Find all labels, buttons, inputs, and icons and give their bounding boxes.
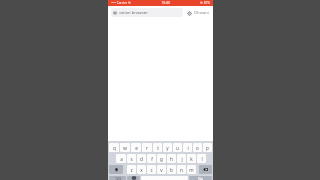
staticText: t	[157, 145, 159, 151]
button[interactable]: b	[167, 165, 176, 174]
staticText: z	[130, 167, 133, 173]
staticText: s	[130, 156, 133, 162]
staticText: onion browser	[119, 10, 148, 16]
button[interactable]: Emoji	[127, 176, 140, 180]
staticText: b	[170, 167, 173, 173]
staticText: n	[180, 167, 183, 173]
staticText: l	[201, 156, 203, 162]
button[interactable]: c	[147, 165, 156, 174]
button[interactable]: e	[131, 143, 141, 152]
button[interactable]: x	[137, 165, 146, 174]
staticText: v	[160, 167, 163, 173]
staticText: x	[140, 167, 143, 173]
button[interactable]: y	[163, 143, 172, 152]
button[interactable]: p	[203, 143, 212, 152]
button[interactable]: m	[187, 165, 196, 174]
button[interactable]: a	[116, 154, 126, 163]
button[interactable]: l	[197, 154, 206, 163]
button[interactable]: d	[137, 154, 146, 163]
staticText: d	[140, 156, 143, 162]
staticText: k	[190, 156, 193, 162]
staticText: o	[196, 145, 199, 151]
button[interactable]: Numbers	[109, 176, 126, 180]
staticText: e	[135, 145, 138, 151]
button[interactable]: Go	[189, 176, 212, 180]
staticText: h	[170, 156, 173, 162]
button[interactable]: onion browser	[111, 8, 183, 17]
button[interactable]: i	[183, 143, 192, 152]
staticText: y	[166, 145, 169, 151]
staticText: f	[151, 156, 153, 162]
button[interactable]: z	[127, 165, 136, 174]
staticText: g	[160, 156, 163, 162]
staticText: i	[187, 145, 189, 151]
button[interactable]: j	[177, 154, 186, 163]
staticText: •••• Carrier ⚑	[111, 1, 131, 5]
button[interactable]: q	[109, 143, 119, 152]
button[interactable]: Dhwani settings	[186, 9, 210, 17]
staticText: c	[150, 167, 153, 173]
button[interactable]: t	[153, 143, 162, 152]
button[interactable]: o	[193, 143, 202, 152]
staticText: a	[120, 156, 123, 162]
button[interactable]: s	[127, 154, 136, 163]
staticText: 10:40	[161, 1, 170, 5]
staticText: ⚑ 87%	[200, 1, 210, 5]
staticText: Go	[198, 176, 203, 180]
button[interactable]: u	[173, 143, 182, 152]
staticText: p	[206, 145, 209, 151]
staticText: w	[123, 145, 127, 151]
staticText: q	[113, 145, 116, 151]
button[interactable]: v	[157, 165, 166, 174]
staticText: Dhwani	[194, 10, 209, 16]
staticText: 123	[115, 176, 121, 180]
button[interactable]: f	[147, 154, 156, 163]
staticText: m	[189, 167, 194, 173]
button[interactable]: Shift	[109, 165, 123, 174]
staticText: r	[146, 145, 148, 151]
button[interactable]: Delete	[199, 165, 212, 174]
staticText: j	[181, 156, 183, 162]
button[interactable]: n	[177, 165, 186, 174]
staticText: u	[176, 145, 179, 151]
button[interactable]: g	[157, 154, 166, 163]
button[interactable]: w	[120, 143, 130, 152]
button[interactable]: r	[142, 143, 152, 152]
button[interactable]: k	[187, 154, 196, 163]
button[interactable]: h	[167, 154, 176, 163]
